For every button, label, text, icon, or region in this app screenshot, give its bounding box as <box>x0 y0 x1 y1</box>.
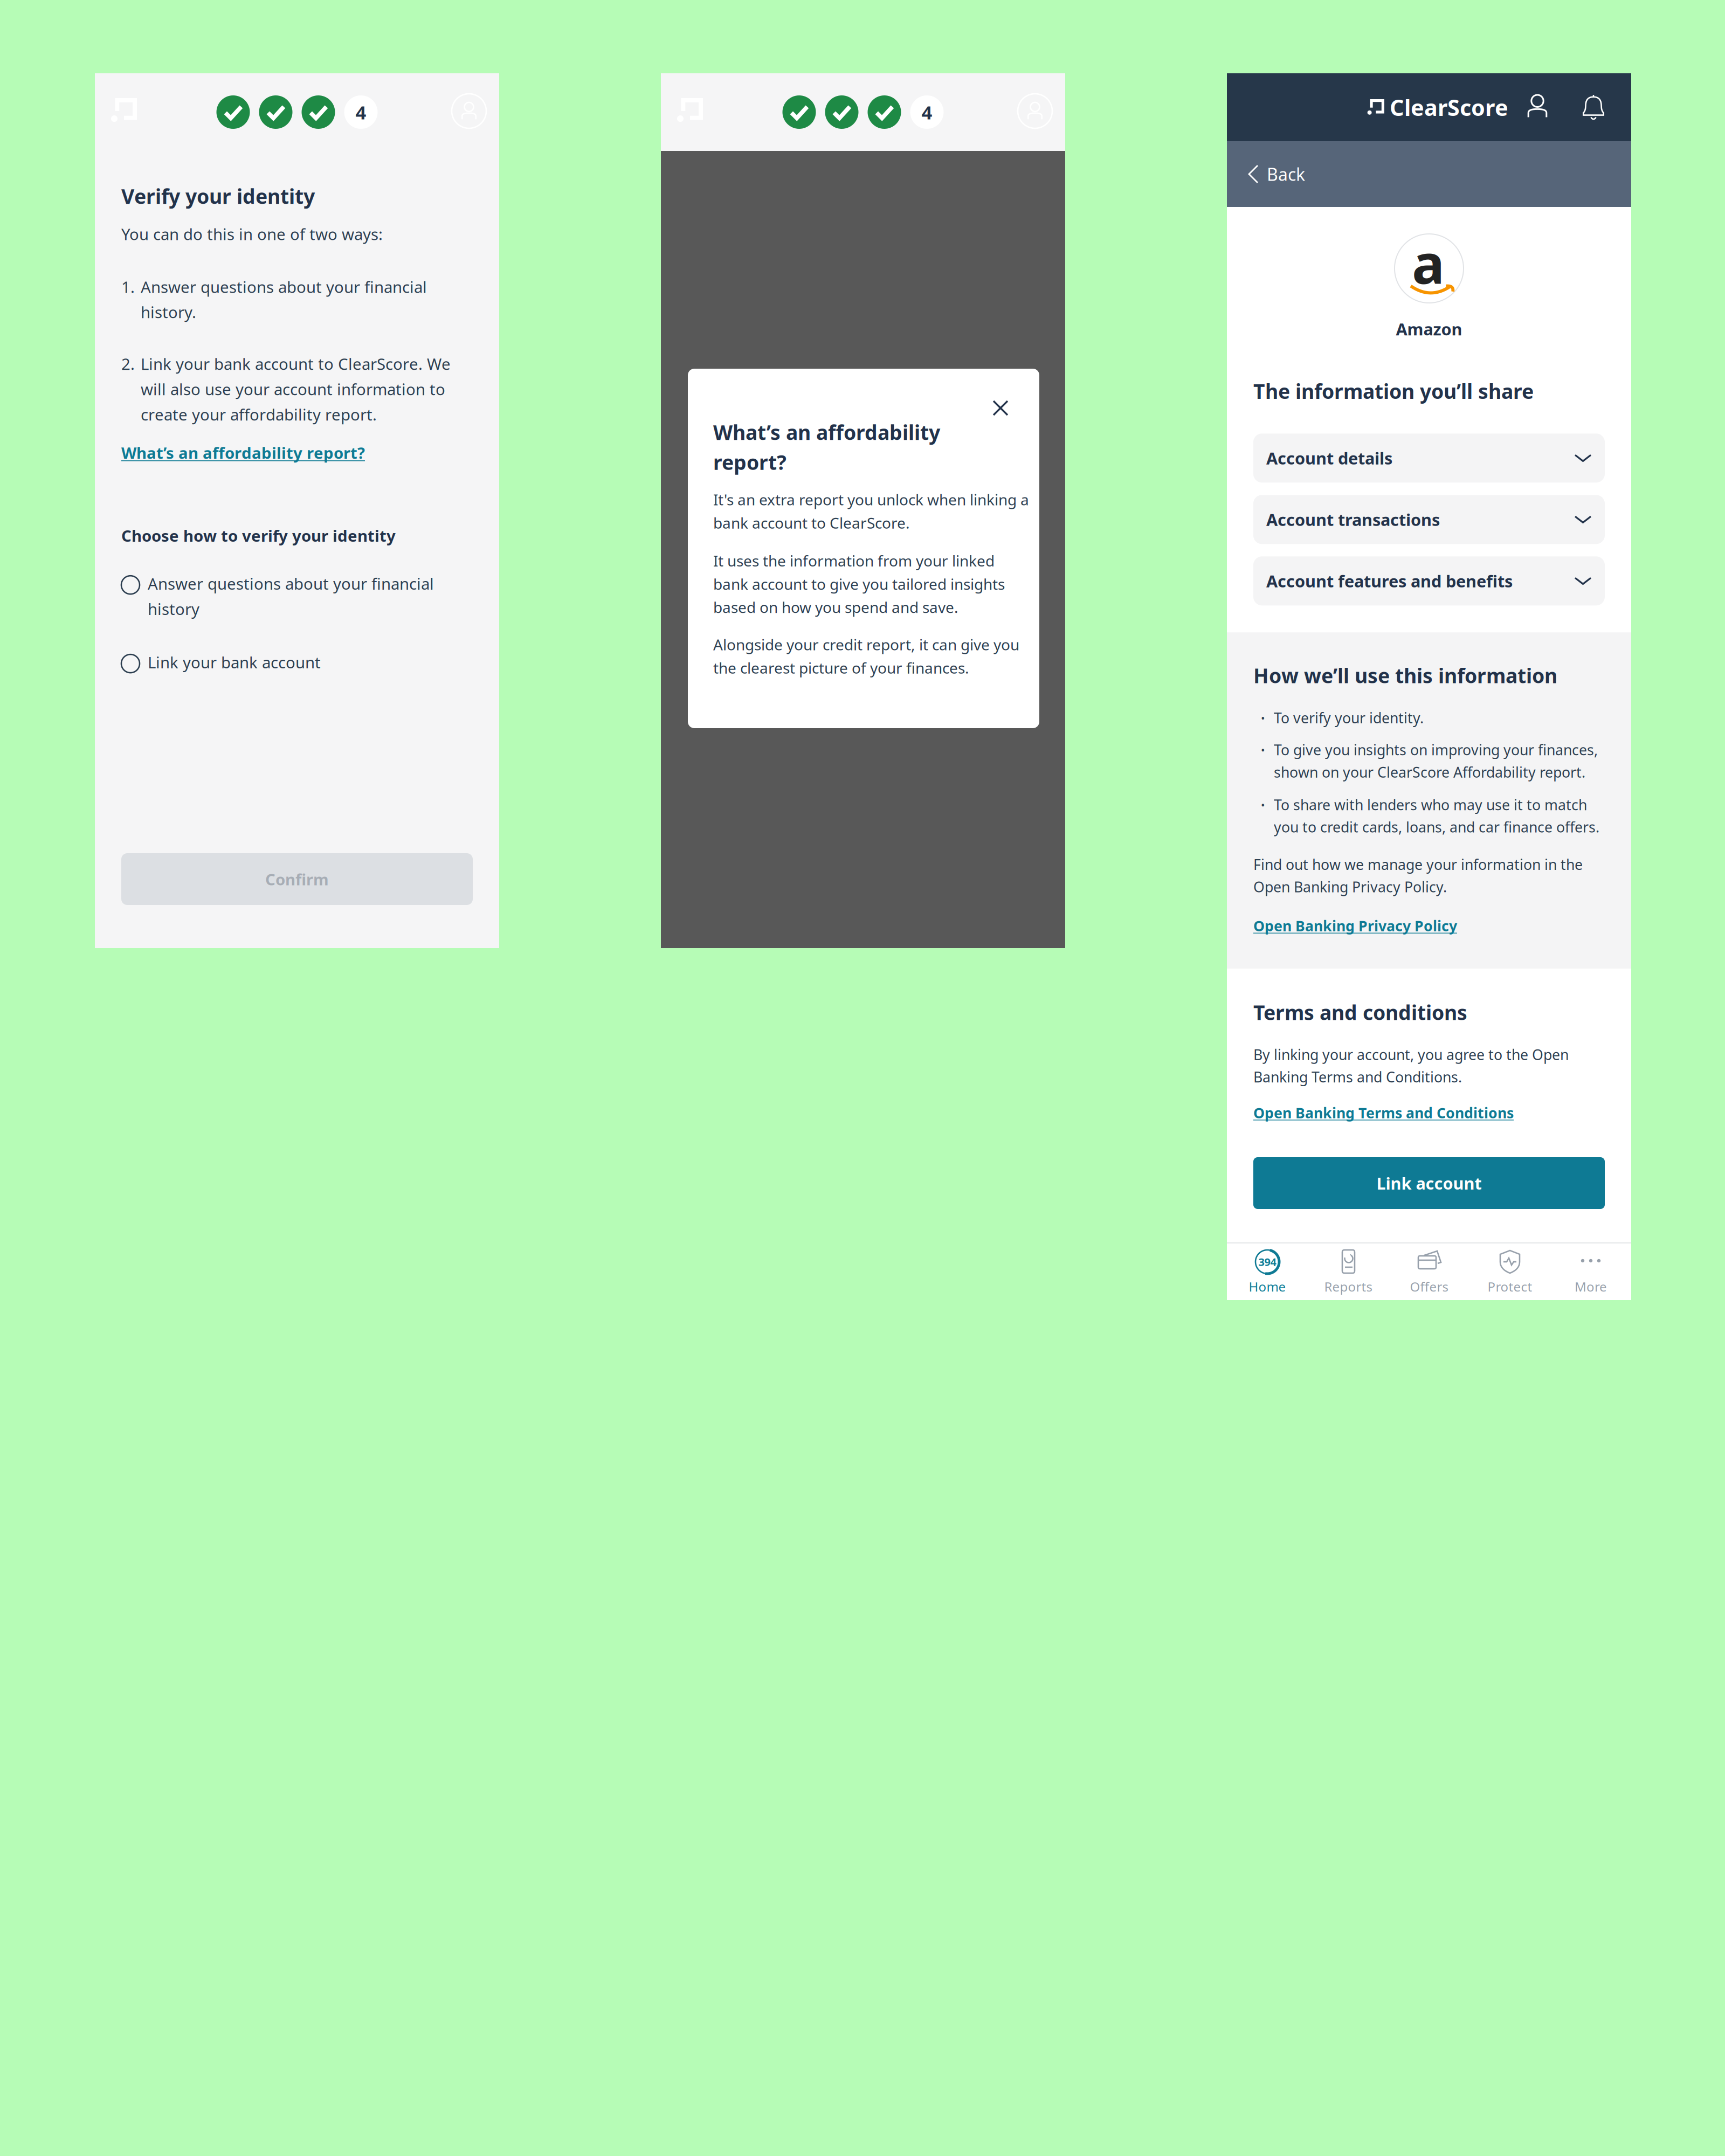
staticText: Alongside your credit report, it can giv… <box>713 634 1019 678</box>
staticText: Account transactions <box>1266 508 1440 530</box>
staticText: • <box>1261 743 1265 757</box>
staticText: To share with lenders who may use it to … <box>1274 795 1599 836</box>
button[interactable]: Reports <box>1308 1243 1389 1300</box>
staticText: Protect <box>1488 1278 1532 1295</box>
button[interactable]: Link your bank account <box>121 652 473 673</box>
staticText: ClearScore <box>1390 92 1508 122</box>
staticText: Open Banking Terms and Conditions <box>1253 1103 1514 1122</box>
staticText: Answer questions about your financial hi… <box>148 573 434 619</box>
staticText: Account details <box>1266 447 1392 469</box>
staticText: To verify your identity. <box>1274 708 1424 727</box>
staticText: Home <box>1249 1278 1286 1295</box>
staticText: Confirm <box>265 869 329 890</box>
button[interactable]: Account <box>1018 94 1052 128</box>
staticText: Link your bank account to ClearScore. We… <box>141 353 451 425</box>
staticText: You can do this in one of two ways: <box>121 223 383 244</box>
button[interactable]: Notifications <box>1579 93 1607 121</box>
button[interactable]: Account features and benefits <box>1253 556 1605 605</box>
staticText: More <box>1575 1278 1607 1295</box>
staticText: 2. <box>121 353 135 374</box>
button[interactable]: Back <box>1227 141 1631 207</box>
button[interactable]: Close <box>991 399 1014 417</box>
staticText: To give you insights on improving your f… <box>1274 740 1598 782</box>
staticText: Reports <box>1324 1278 1372 1295</box>
button[interactable]: Account <box>1522 92 1552 122</box>
staticText: 4 <box>922 100 932 125</box>
button[interactable]: 394 <box>1227 1243 1308 1300</box>
button[interactable]: Link account <box>1253 1157 1605 1209</box>
staticText: It uses the information from your linked… <box>713 551 1005 617</box>
button[interactable]: More <box>1550 1243 1631 1300</box>
staticText: 4 <box>356 100 366 125</box>
staticText: a <box>1412 226 1445 299</box>
staticText: Amazon <box>1396 318 1462 340</box>
button[interactable]: Offers <box>1389 1243 1469 1300</box>
staticText: Offers <box>1410 1278 1448 1295</box>
staticText: Find out how we manage your information … <box>1253 855 1583 896</box>
staticText: • <box>1261 711 1265 725</box>
button[interactable]: Answer questions about your financial hi… <box>121 573 473 619</box>
staticText: Terms and conditions <box>1253 999 1467 1026</box>
staticText: The information you’ll share <box>1253 378 1534 404</box>
button[interactable]: Confirm <box>121 853 473 905</box>
staticText: 1. <box>121 276 135 297</box>
staticText: What’s an affordability report? <box>121 442 365 463</box>
staticText: What’s an affordability report? <box>713 419 940 476</box>
button[interactable]: What’s an affordability report? <box>121 425 365 463</box>
staticText: • <box>1261 798 1265 812</box>
staticText: Link your bank account <box>148 652 321 673</box>
staticText: Verify your identity <box>121 183 315 209</box>
staticText: Back <box>1267 163 1305 186</box>
staticText: It's an extra report you unlock when lin… <box>713 490 1029 533</box>
staticText: Link account <box>1376 1172 1482 1194</box>
button[interactable]: Account details <box>1253 434 1605 483</box>
button[interactable]: Account <box>452 94 486 128</box>
staticText: How we’ll use this information <box>1253 662 1557 689</box>
staticText: Choose how to verify your identity <box>121 525 396 546</box>
staticText: Open Banking Privacy Policy <box>1253 916 1457 935</box>
staticText: 394 <box>1258 1255 1276 1269</box>
button[interactable]: Account transactions <box>1253 495 1605 544</box>
button[interactable]: Open Banking Privacy Policy <box>1253 896 1457 935</box>
staticText: By linking your account, you agree to th… <box>1253 1045 1569 1086</box>
staticText: Answer questions about your financial hi… <box>141 276 427 323</box>
staticText: Account features and benefits <box>1266 570 1513 592</box>
button[interactable]: Open Banking Terms and Conditions <box>1253 1086 1514 1122</box>
button[interactable]: Protect <box>1469 1243 1550 1300</box>
